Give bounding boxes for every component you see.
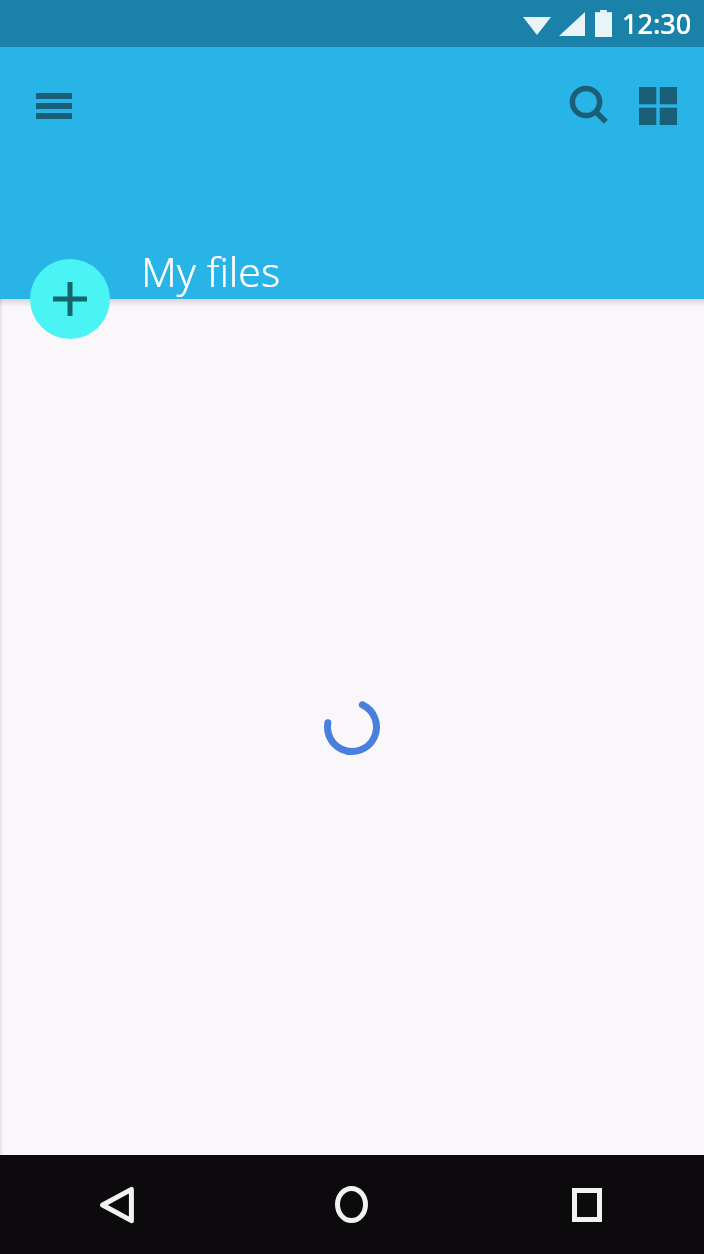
button[interactable]: Home — [234, 1155, 469, 1254]
button[interactable]: Recent apps — [469, 1155, 704, 1254]
staticText: My files — [141, 243, 281, 299]
button[interactable]: Add — [30, 259, 110, 339]
button[interactable]: Navigation menu — [20, 72, 88, 140]
button[interactable]: Search — [556, 72, 624, 140]
button[interactable]: Grid view — [624, 72, 692, 140]
button[interactable]: Back — [0, 1155, 234, 1254]
staticText: 12:30 — [622, 5, 692, 42]
